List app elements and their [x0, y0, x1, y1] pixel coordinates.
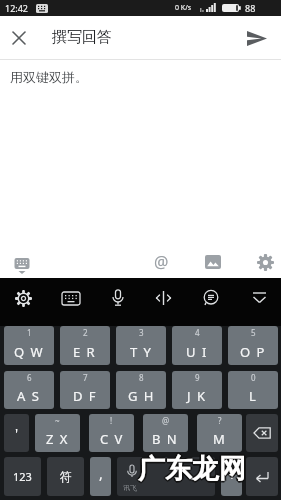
staticText: 4	[195, 327, 200, 338]
button[interactable]	[245, 284, 273, 312]
staticText: 2	[83, 327, 88, 338]
button[interactable]: ~	[35, 414, 80, 452]
staticText: C V	[100, 430, 124, 448]
staticText: 用双键双拼。	[10, 69, 88, 85]
button[interactable]: 6	[4, 371, 54, 409]
button[interactable]: 符	[47, 457, 84, 496]
staticText: .	[230, 464, 234, 483]
staticText: 讯飞	[123, 483, 137, 492]
staticText: ,	[99, 464, 103, 483]
button[interactable]: ?	[197, 414, 242, 452]
staticText: 9	[195, 372, 200, 383]
staticText: @	[162, 415, 170, 426]
staticText: @	[154, 251, 169, 273]
staticText: D F	[73, 387, 98, 405]
button[interactable]	[254, 251, 276, 273]
staticText: B N	[152, 430, 179, 448]
staticText: 广东龙网	[140, 452, 248, 486]
staticText: E R	[73, 343, 97, 361]
staticText: 广东龙网	[137, 453, 245, 487]
staticText: 广东龙网	[138, 454, 246, 488]
staticText: 0 K/s	[175, 3, 192, 13]
staticText: G H	[128, 387, 155, 405]
staticText: 符	[60, 469, 72, 484]
staticText: Z X	[46, 430, 69, 448]
button[interactable]: 4	[172, 326, 222, 365]
button[interactable]: 讯飞	[117, 457, 215, 496]
staticText: T Y	[130, 343, 153, 361]
button[interactable]: ,	[90, 457, 111, 496]
button[interactable]: 123	[4, 457, 41, 496]
button[interactable]: 9	[172, 371, 222, 409]
staticText: M	[213, 430, 227, 448]
staticText: 广东龙网	[137, 451, 245, 485]
button[interactable]	[246, 414, 278, 452]
button[interactable]	[57, 284, 85, 312]
staticText: A S	[17, 387, 41, 405]
button[interactable]: 7	[60, 371, 110, 409]
button[interactable]	[9, 284, 37, 312]
button[interactable]	[202, 251, 224, 273]
staticText: 广东龙网	[139, 451, 247, 485]
button[interactable]: @	[150, 251, 172, 273]
staticText: 12:42	[5, 2, 29, 14]
staticText: ~	[55, 415, 60, 426]
button[interactable]	[104, 284, 132, 312]
staticText: J K	[187, 387, 207, 405]
button[interactable]	[246, 457, 278, 496]
staticText: 0	[251, 372, 256, 383]
button[interactable]	[149, 284, 177, 312]
button[interactable]	[243, 27, 271, 49]
button[interactable]	[197, 284, 225, 312]
staticText: 5	[251, 327, 256, 338]
button[interactable]: 1	[4, 326, 54, 365]
button[interactable]: @	[143, 414, 188, 452]
staticText: '	[15, 424, 19, 443]
staticText: 3	[139, 327, 144, 338]
staticText: O P	[240, 343, 266, 361]
button[interactable]: .	[221, 457, 242, 496]
button[interactable]: 3	[116, 326, 166, 365]
staticText: 88	[245, 2, 256, 14]
button[interactable]: '	[4, 414, 29, 452]
button[interactable]: 2	[60, 326, 110, 365]
staticText: 广东龙网	[138, 452, 246, 486]
staticText: U I	[186, 343, 208, 361]
button[interactable]: 5	[228, 326, 278, 365]
button[interactable]: 0	[228, 371, 278, 409]
staticText: 7	[83, 372, 88, 383]
staticText: !	[110, 415, 113, 426]
staticText: 8	[139, 372, 144, 383]
button[interactable]: 8	[116, 371, 166, 409]
button[interactable]	[8, 27, 30, 49]
button[interactable]: !	[89, 414, 134, 452]
button[interactable]	[10, 253, 34, 277]
staticText: ?	[218, 415, 222, 426]
staticText: Q W	[14, 343, 45, 361]
staticText: L	[249, 387, 258, 405]
staticText: 广东龙网	[139, 453, 247, 487]
staticText: 广东龙网	[138, 450, 246, 484]
staticText: 广东龙网	[136, 452, 244, 486]
staticText: 撰写回答	[52, 28, 112, 47]
staticText: 1	[27, 327, 32, 338]
staticText: 6	[27, 372, 32, 383]
staticText: 123	[13, 469, 32, 484]
